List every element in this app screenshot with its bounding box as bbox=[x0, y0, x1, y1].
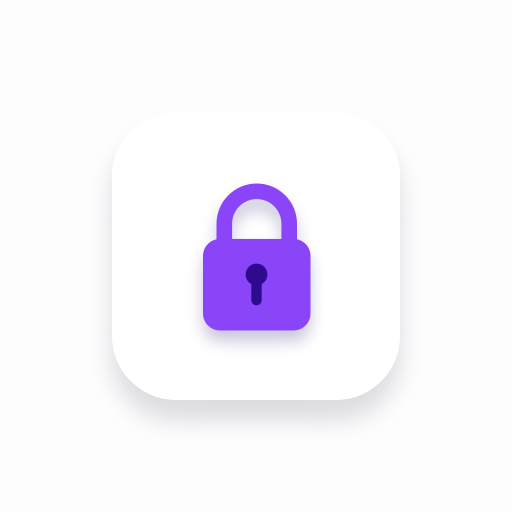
button[interactable]: Locked bbox=[112, 112, 400, 400]
